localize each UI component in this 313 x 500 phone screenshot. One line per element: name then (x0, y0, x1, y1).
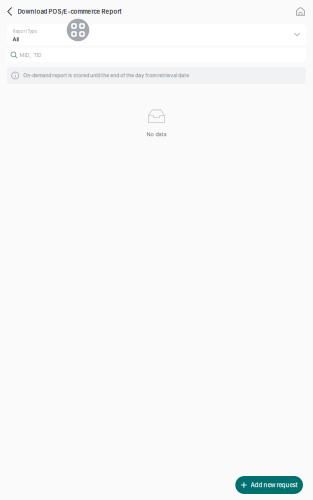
staticText: Download POS/E-commerce Report (17, 8, 121, 15)
staticText: Add new request (250, 481, 297, 489)
button[interactable]: MID, TID (7, 48, 306, 62)
staticText: No data (146, 131, 166, 137)
button[interactable]: Report Type (7, 24, 306, 45)
button[interactable]: Download POS/E-commerce Report (0, 0, 127, 23)
staticText: MID, TID (19, 52, 41, 58)
button[interactable]: Add new request (235, 476, 303, 494)
staticText: On-demand report is stored until the end… (23, 72, 189, 78)
button[interactable]: Home (288, 0, 313, 23)
staticText: Report Type (12, 29, 36, 34)
staticText: All (12, 36, 18, 42)
